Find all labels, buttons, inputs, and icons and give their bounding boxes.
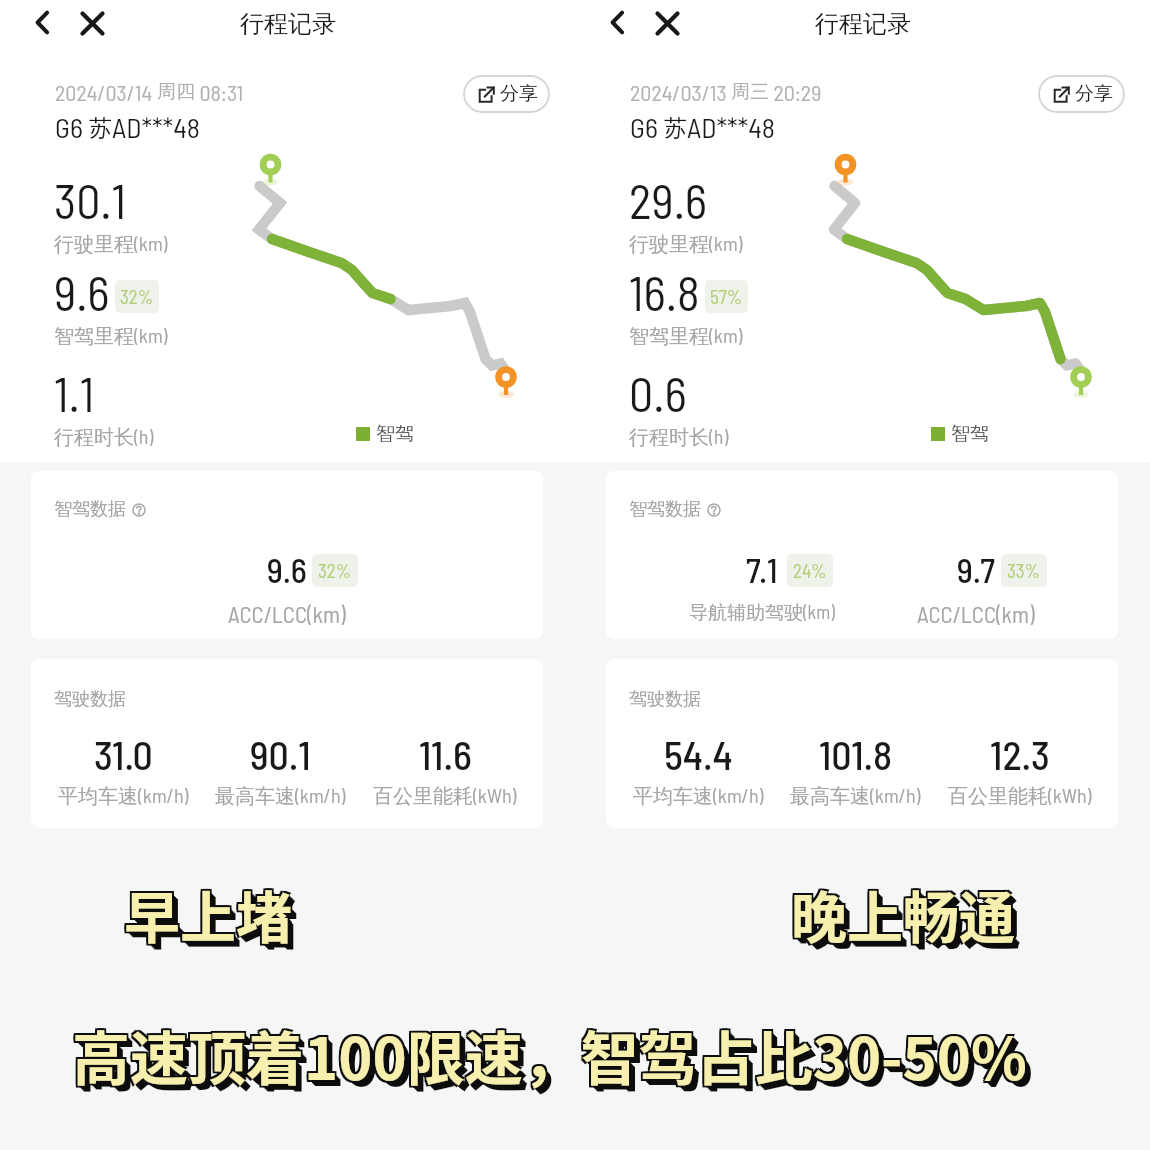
staticText: 智驾里程(km) xyxy=(54,323,168,349)
staticText: 早上堵 xyxy=(122,875,290,956)
staticText: 9.6 xyxy=(54,263,110,321)
button[interactable]: 分享 xyxy=(463,75,550,113)
staticText: AD***48 xyxy=(112,110,200,144)
staticText: 2024/03/13 xyxy=(630,79,731,105)
staticText: 高速顶着100限速，智驾占比30-50% xyxy=(70,1011,1025,1095)
button[interactable]: Close xyxy=(78,8,107,37)
staticText: 早上堵 xyxy=(122,873,290,954)
staticText: 高速顶着100限速，智驾占比30-50% xyxy=(77,1018,1032,1102)
staticText: 1.1 xyxy=(54,364,95,422)
staticText: ACC/LCC(km) xyxy=(917,600,1035,628)
staticText: 90.1 xyxy=(250,730,311,778)
staticText: 101.8 xyxy=(819,730,893,778)
staticText: 晚上畅通 xyxy=(791,871,1015,952)
staticText: 9.7 xyxy=(957,549,996,590)
staticText: AD***48 xyxy=(687,110,775,144)
button[interactable]: Back xyxy=(603,8,632,37)
staticText: 20:29 xyxy=(769,79,822,105)
staticText: 最高车速(km/h) xyxy=(215,783,346,809)
staticText: 高速顶着100限速，智驾占比30-50% xyxy=(72,1011,1027,1095)
staticText: G6 xyxy=(630,110,664,144)
button[interactable]: 智驾数据 xyxy=(31,471,543,639)
staticText: 早上堵 xyxy=(122,871,290,952)
staticText: 早上堵 xyxy=(124,873,292,954)
staticText: 智驾数据 xyxy=(629,498,701,521)
staticText: 29.6 xyxy=(629,171,708,229)
staticText: 百公里能耗(kWh) xyxy=(948,783,1092,809)
staticText: 晚上畅通 xyxy=(793,871,1017,952)
staticText: 行程时长(h) xyxy=(629,424,729,450)
button[interactable]: 分享 xyxy=(1038,75,1125,113)
staticText: 智驾里程(km) xyxy=(629,323,743,349)
staticText: 高速顶着100限速，智驾占比30-50% xyxy=(72,1013,1027,1097)
staticText: 32% xyxy=(120,285,154,308)
button[interactable]: 驾驶数据 xyxy=(606,659,1118,828)
staticText: 晚上畅通 xyxy=(795,877,1019,958)
staticText: 平均车速(km/h) xyxy=(58,783,189,809)
staticText: 08:31 xyxy=(195,79,244,105)
staticText: 晚上畅通 xyxy=(793,875,1017,956)
staticText: 7.1 xyxy=(746,549,778,590)
staticText: 16.8 xyxy=(629,263,700,321)
staticText: 9.6 xyxy=(267,549,307,590)
button[interactable]: Back xyxy=(28,8,57,37)
staticText: 0.6 xyxy=(629,364,687,422)
staticText: 高速顶着100限速，智驾占比30-50% xyxy=(74,1015,1029,1099)
staticText: 32% xyxy=(318,559,352,582)
staticText: 分享 xyxy=(1075,82,1113,106)
staticText: 晚上畅通 xyxy=(791,873,1015,954)
staticText: 高速顶着100限速，智驾占比30-50% xyxy=(74,1011,1029,1095)
button[interactable]: Close xyxy=(653,8,682,37)
staticText: 苏 xyxy=(89,114,112,143)
staticText: 33% xyxy=(1007,559,1041,582)
staticText: 早上堵 xyxy=(129,878,297,959)
staticText: 早上堵 xyxy=(130,879,298,960)
staticText: ACC/LCC(km) xyxy=(228,600,346,628)
staticText: 早上堵 xyxy=(127,876,295,957)
staticText: 行驶里程(km) xyxy=(629,231,743,257)
button[interactable]: 智驾数据 xyxy=(606,471,1118,639)
staticText: 行程记录 xyxy=(815,9,911,39)
staticText: 57% xyxy=(710,285,743,308)
staticText: 高速顶着100限速，智驾占比30-50% xyxy=(76,1017,1031,1101)
staticText: 导航辅助驾驶(km) xyxy=(689,600,835,625)
staticText: 行程时长(h) xyxy=(54,424,154,450)
staticText: 晚上畅通 xyxy=(789,873,1013,954)
staticText: 晚上畅通 xyxy=(789,871,1013,952)
staticText: 高速顶着100限速，智驾占比30-50% xyxy=(70,1013,1025,1097)
staticText: 晚上畅通 xyxy=(797,879,1021,960)
staticText: 智驾 xyxy=(951,422,989,446)
staticText: 早上堵 xyxy=(126,875,294,956)
staticText: 驾驶数据 xyxy=(54,688,126,711)
staticText: 高速顶着100限速，智驾占比30-50% xyxy=(75,1016,1030,1100)
staticText: 周三 xyxy=(731,80,769,104)
staticText: 百公里能耗(kWh) xyxy=(373,783,517,809)
staticText: 周四 xyxy=(157,80,195,104)
staticText: 平均车速(km/h) xyxy=(633,783,764,809)
staticText: 智驾 xyxy=(376,422,414,446)
staticText: 2024/03/14 xyxy=(55,79,157,105)
staticText: 12.3 xyxy=(990,730,1050,778)
staticText: 晚上畅通 xyxy=(794,876,1018,957)
staticText: 高速顶着100限速，智驾占比30-50% xyxy=(70,1015,1025,1099)
staticText: 早上堵 xyxy=(124,871,292,952)
staticText: 驾驶数据 xyxy=(629,688,701,711)
staticText: 24% xyxy=(793,559,827,582)
staticText: 早上堵 xyxy=(128,877,296,958)
staticText: 54.4 xyxy=(664,730,733,778)
staticText: 11.6 xyxy=(419,730,472,778)
button[interactable]: About smart-driving data xyxy=(132,503,146,517)
staticText: 高速顶着100限速，智驾占比30-50% xyxy=(78,1019,1033,1103)
button[interactable]: 驾驶数据 xyxy=(31,659,543,828)
button[interactable]: About smart-driving data xyxy=(707,503,721,517)
staticText: 最高车速(km/h) xyxy=(790,783,921,809)
staticText: 31.0 xyxy=(94,730,153,778)
staticText: 分享 xyxy=(500,82,538,106)
staticText: 行程记录 xyxy=(240,9,336,39)
staticText: 智驾数据 xyxy=(54,498,126,521)
staticText: 苏 xyxy=(664,114,687,143)
staticText: 早上堵 xyxy=(126,871,294,952)
staticText: 行驶里程(km) xyxy=(54,231,168,257)
staticText: 晚上畅通 xyxy=(796,878,1020,959)
staticText: G6 xyxy=(55,110,89,144)
